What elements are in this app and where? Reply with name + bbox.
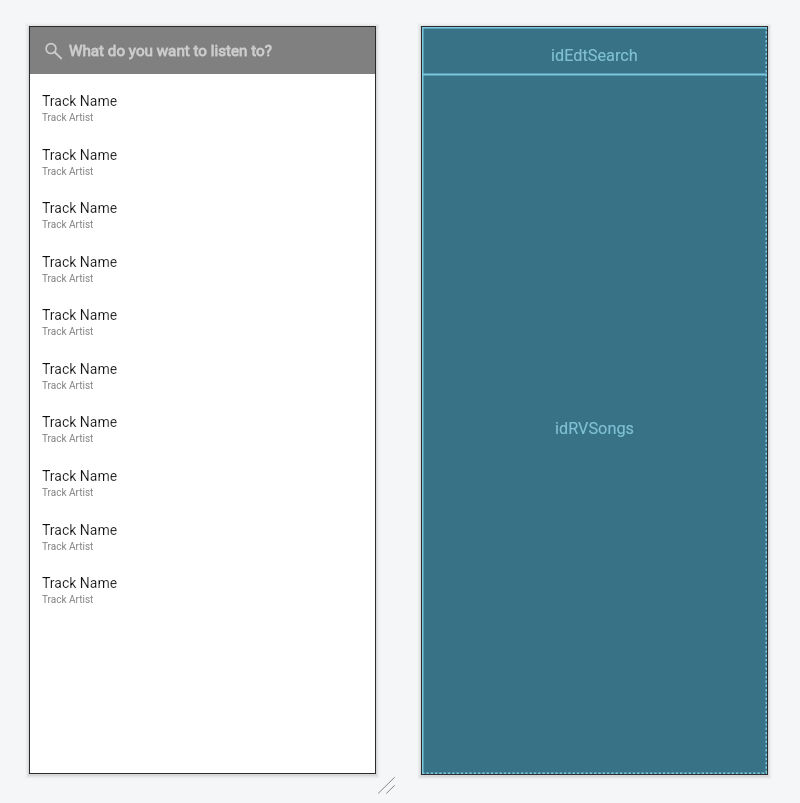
staticText: Track Artist	[42, 433, 94, 445]
staticText: Track Artist	[42, 594, 94, 606]
staticText: What do you want to listen to?	[69, 42, 272, 60]
staticText: Track Artist	[42, 541, 94, 553]
staticText: Track Artist	[42, 273, 94, 285]
button[interactable]: Track Name	[30, 395, 375, 449]
button[interactable]: Track Name	[30, 128, 375, 182]
button[interactable]: Track Name	[30, 288, 375, 342]
staticText: Track Artist	[42, 112, 94, 124]
staticText: Track Artist	[42, 487, 94, 499]
button[interactable]: Track Name	[30, 503, 375, 557]
staticText: Track Name	[42, 147, 118, 163]
button[interactable]: Track Name	[30, 556, 375, 610]
staticText: Track Name	[42, 93, 118, 109]
staticText: Track Name	[42, 468, 118, 484]
staticText: Track Name	[42, 575, 118, 591]
staticText: Track Artist	[42, 380, 94, 392]
staticText: Track Artist	[42, 166, 94, 178]
button[interactable]: Track Name	[30, 74, 375, 128]
button[interactable]: Track Name	[30, 181, 375, 235]
button[interactable]: Search	[30, 27, 375, 74]
button[interactable]: Resize preview	[376, 774, 398, 796]
button[interactable]: idRVSongs	[422, 74, 767, 774]
staticText: Track Name	[42, 361, 118, 377]
button[interactable]: Track Name	[30, 449, 375, 503]
staticText: Track Name	[42, 307, 118, 323]
staticText: Track Name	[42, 254, 118, 270]
staticText: idRVSongs	[555, 419, 634, 438]
staticText: Track Artist	[42, 219, 94, 231]
staticText: Track Name	[42, 414, 118, 430]
staticText: Track Name	[42, 200, 118, 216]
button[interactable]: Track Name	[30, 235, 375, 289]
staticText: Track Name	[42, 522, 118, 538]
staticText: idEdtSearch	[551, 46, 638, 65]
button[interactable]: Track Name	[30, 342, 375, 396]
staticText: Track Artist	[42, 326, 94, 338]
button[interactable]: idEdtSearch	[422, 27, 767, 75]
other: Search	[45, 43, 62, 60]
